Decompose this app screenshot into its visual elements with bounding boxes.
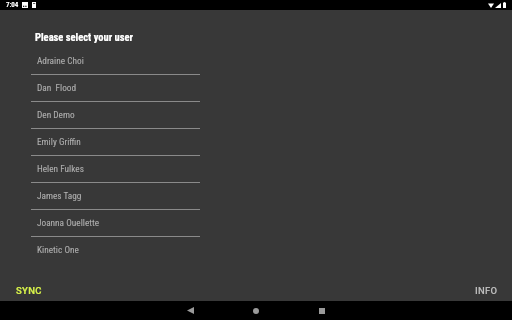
- button[interactable]: Emily Griffin: [0, 129, 512, 156]
- button[interactable]: INFO: [467, 281, 506, 300]
- button[interactable]: Helen Fulkes: [0, 156, 512, 183]
- staticText: James Tagg: [37, 190, 82, 201]
- button[interactable]: SYNC: [8, 281, 50, 300]
- staticText: Kinetic One: [37, 244, 79, 255]
- button[interactable]: Kinetic One: [0, 237, 512, 264]
- button[interactable]: Dan Flood: [0, 75, 512, 102]
- button[interactable]: Adraine Choi: [0, 48, 512, 75]
- staticText: Please select your user: [35, 31, 134, 43]
- staticText: INFO: [475, 285, 498, 296]
- staticText: 7:04: [6, 1, 19, 9]
- button[interactable]: Den Demo: [0, 102, 512, 129]
- button[interactable]: Joanna Ouellette: [0, 210, 512, 237]
- staticText: Helen Fulkes: [37, 163, 84, 174]
- button[interactable]: James Tagg: [0, 183, 512, 210]
- staticText: Emily Griffin: [37, 136, 81, 147]
- button[interactable]: Home: [234, 301, 278, 320]
- staticText: SYNC: [16, 285, 42, 296]
- staticText: Joanna Ouellette: [37, 217, 100, 228]
- button[interactable]: Recents: [300, 301, 344, 320]
- staticText: Dan Flood: [37, 82, 77, 93]
- staticText: Adraine Choi: [37, 55, 84, 66]
- staticText: Den Demo: [37, 109, 75, 120]
- button[interactable]: Back: [168, 301, 212, 320]
